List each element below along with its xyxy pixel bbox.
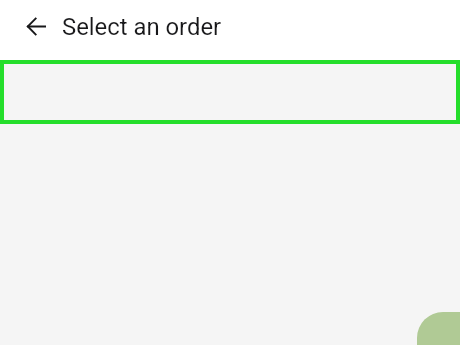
button[interactable]: Create order xyxy=(417,312,460,345)
staticText: Select an order xyxy=(62,13,222,41)
button[interactable]: Navigate back xyxy=(17,6,57,46)
